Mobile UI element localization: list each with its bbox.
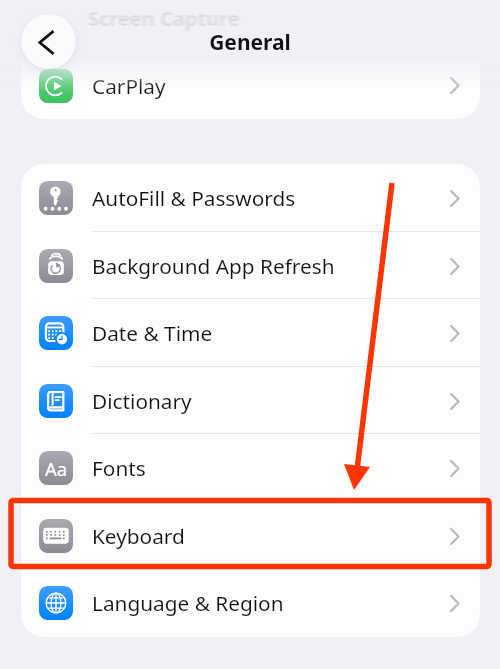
button[interactable]: CarPlay: [21, 49, 480, 119]
staticText: AutoFill & Passwords: [92, 184, 296, 212]
staticText: Background App Refresh: [92, 252, 335, 280]
staticText: Screen Capture: [90, 5, 242, 32]
staticText: Fonts: [92, 454, 146, 482]
button[interactable]: Background App Refresh: [21, 232, 480, 300]
staticText: Language & Region: [92, 589, 284, 617]
staticText: Keyboard: [92, 522, 185, 550]
button[interactable]: Keyboard: [21, 502, 480, 570]
staticText: Screen Capture: [88, 5, 240, 32]
staticText: Aa: [45, 456, 68, 481]
staticText: Screen Capture: [87, 5, 239, 32]
staticText: Dictionary: [92, 387, 192, 415]
staticText: General: [0, 28, 500, 57]
button[interactable]: AutoFill & Passwords: [21, 164, 480, 232]
button[interactable]: Back: [21, 14, 76, 69]
button[interactable]: Date & Time: [21, 299, 480, 367]
staticText: Screen Capture: [86, 5, 238, 32]
button[interactable]: Dictionary: [21, 367, 480, 435]
staticText: CarPlay: [92, 72, 166, 100]
button[interactable]: Aa: [21, 434, 480, 502]
staticText: Date & Time: [92, 319, 213, 347]
staticText: Screen Capture: [89, 5, 241, 32]
button[interactable]: Language & Region: [21, 569, 480, 637]
